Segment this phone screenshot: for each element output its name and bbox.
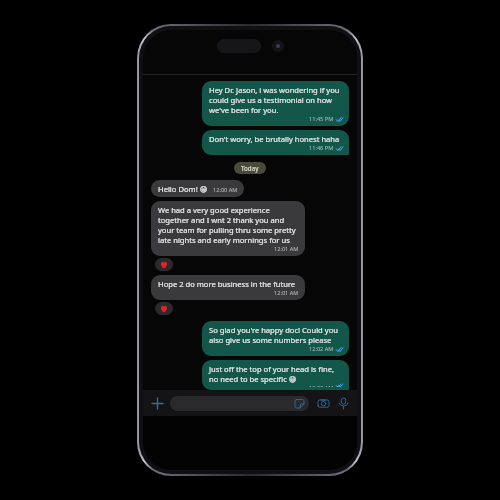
- button[interactable]: Hey Dr. Jason, i was wondering if you co…: [202, 81, 349, 126]
- staticText: Hey Dr. Jason, i was wondering if you co…: [209, 85, 343, 115]
- staticText: Hope 2 do more business in the future: [158, 279, 296, 289]
- staticText: Hello Dom! 😁: [158, 184, 208, 194]
- button[interactable]: Add attachment: [149, 395, 165, 411]
- staticText: 12:01 AM: [274, 289, 299, 297]
- button[interactable]: Voice message: [335, 395, 351, 411]
- button[interactable]: So glad you're happy doc! Could you also…: [202, 321, 349, 356]
- staticText: 12:02 AM: [309, 345, 334, 353]
- button[interactable]: Hello Dom! 😁: [151, 180, 244, 197]
- button[interactable]: Just off the top of your head is fine, n…: [202, 360, 349, 390]
- button[interactable]: Today: [234, 162, 266, 174]
- button[interactable]: Don't worry, be brutally honest haha: [202, 130, 349, 155]
- staticText: Just off the top of your head is fine, n…: [209, 364, 343, 384]
- staticText: 12:00 AM: [213, 186, 238, 194]
- staticText: 12:01 AM: [274, 245, 299, 253]
- button[interactable]: We had a very good experience together a…: [151, 201, 305, 256]
- staticText: 11:46 PM: [309, 144, 334, 152]
- button[interactable]: Message input: [170, 396, 309, 411]
- button[interactable]: Hope 2 do more business in the future: [151, 275, 305, 300]
- button[interactable]: Heart reaction: [155, 302, 173, 315]
- staticText: Don't worry, be brutally honest haha: [209, 134, 340, 144]
- button[interactable]: Camera: [315, 395, 331, 411]
- staticText: We had a very good experience together a…: [158, 205, 299, 245]
- staticText: 11:45 PM: [309, 115, 334, 123]
- staticText: So glad you're happy doc! Could you also…: [209, 325, 343, 345]
- staticText: Today: [241, 164, 259, 172]
- button[interactable]: Heart reaction: [155, 258, 173, 271]
- staticText: 12:02 AM: [309, 384, 334, 387]
